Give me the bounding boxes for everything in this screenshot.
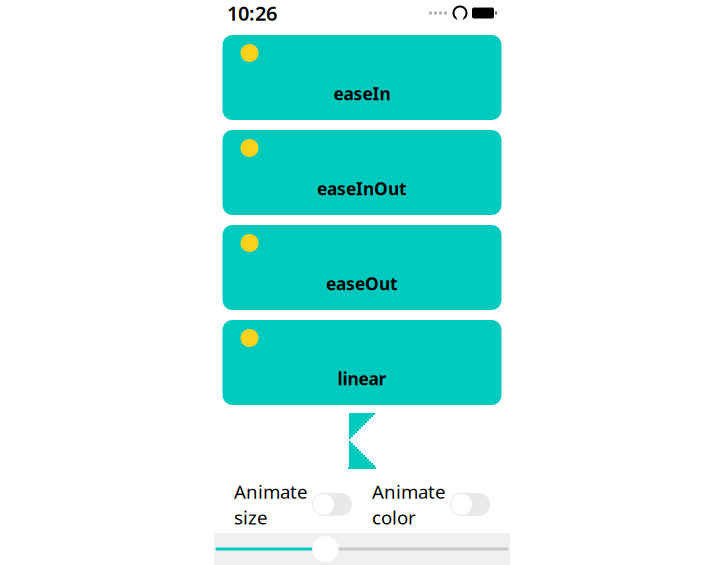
button[interactable]: Animate — [372, 479, 490, 530]
button[interactable]: easeInOut — [222, 130, 501, 215]
button[interactable]: Play animation — [332, 415, 392, 467]
button[interactable]: linear — [222, 320, 501, 405]
staticText: easeIn — [333, 82, 390, 105]
staticText: Animate — [234, 479, 308, 504]
staticText: size — [234, 505, 268, 530]
button[interactable]: easeOut — [222, 225, 501, 310]
staticText: easeInOut — [317, 177, 407, 200]
staticText: Animate — [372, 479, 446, 504]
staticText: easeOut — [326, 272, 398, 295]
button[interactable]: Animate — [234, 479, 352, 530]
staticText: 10:26 — [227, 0, 277, 26]
staticText: linear — [337, 367, 386, 390]
staticText: color — [372, 505, 416, 530]
button[interactable]: easeIn — [222, 35, 501, 120]
